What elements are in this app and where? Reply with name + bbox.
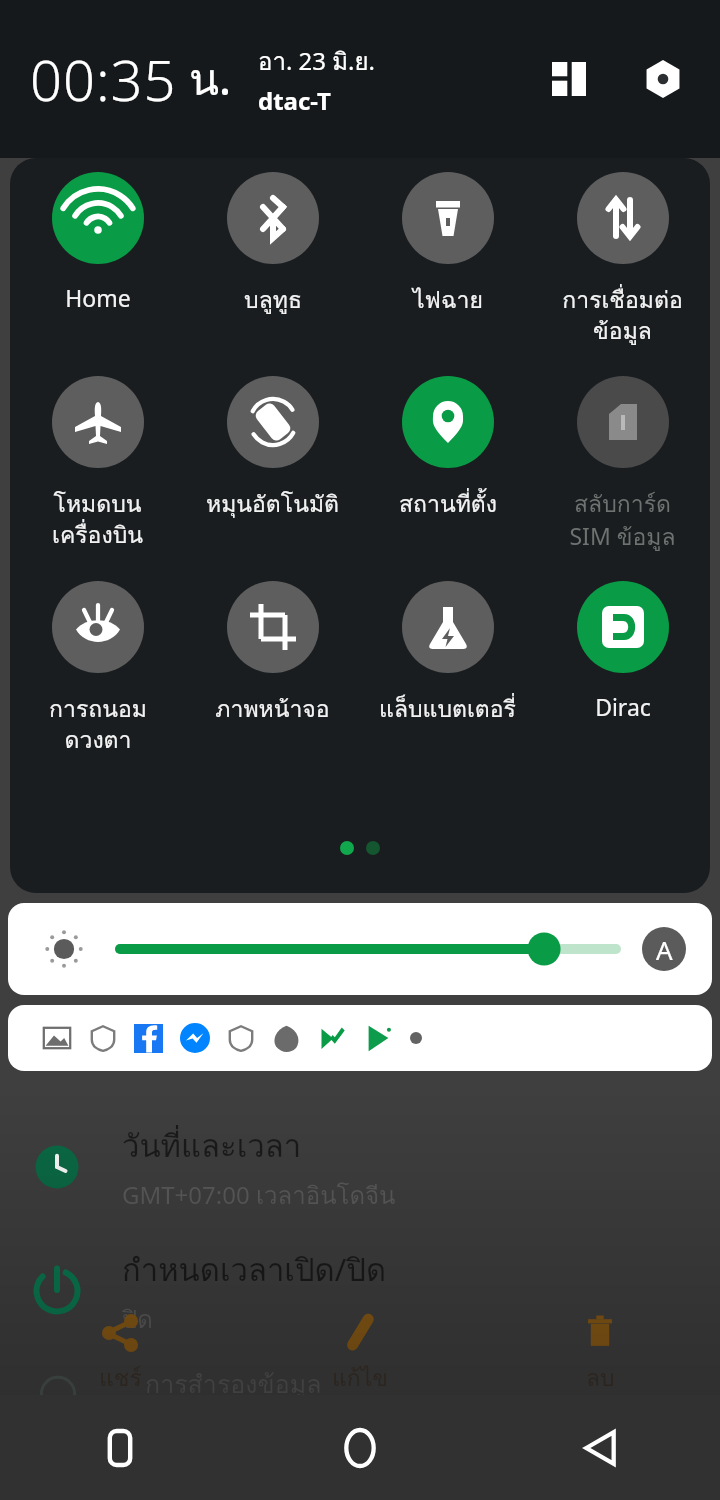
- staticText: สถานที่ตั้ง: [399, 486, 497, 523]
- button[interactable]: แก้ไข: [240, 1310, 480, 1400]
- staticText: ลบ: [586, 1360, 615, 1397]
- button[interactable]: กำหนดเวลาเปิด/ปิด: [0, 1236, 720, 1346]
- button[interactable]: ไฟฉาย: [360, 172, 535, 319]
- staticText: บลูทูธ: [244, 282, 302, 319]
- staticText: กำหนดเวลาเปิด/ปิด: [122, 1245, 387, 1294]
- staticText: วันที่และเวลา: [122, 1121, 302, 1170]
- staticText: ภาพหน้าจอ: [215, 691, 330, 728]
- staticText: หมุนอัตโนมัติ: [206, 486, 339, 523]
- staticText: Dirac: [595, 691, 651, 722]
- staticText: อา. 23 มิ.ย.: [258, 42, 376, 80]
- button[interactable]: [8, 1005, 712, 1071]
- staticText: dtac-T: [258, 84, 331, 117]
- button[interactable]: Recents: [0, 1395, 240, 1500]
- staticText: การสำรองข้อมูล: [145, 1364, 322, 1404]
- button[interactable]: Brightness: [8, 903, 712, 995]
- button[interactable]: วันที่และเวลา: [0, 1112, 720, 1222]
- button[interactable]: Home: [10, 172, 185, 313]
- staticText: สลับการ์ด SIM ข้อมูล: [569, 486, 676, 555]
- staticText: การเชื่อมต่อ ข้อมูล: [562, 282, 683, 350]
- button[interactable]: การถนอม ดวงตา: [10, 581, 185, 759]
- button[interactable]: ภาพหน้าจอ: [185, 581, 360, 728]
- staticText: 00:35: [30, 41, 177, 117]
- staticText: แล็บแบตเตอรี่: [379, 691, 516, 728]
- button[interactable]: แชร์: [0, 1310, 240, 1400]
- button[interactable]: หมุนอัตโนมัติ: [185, 376, 360, 523]
- staticText: น.: [189, 44, 232, 114]
- button[interactable]: Settings: [636, 52, 690, 106]
- button[interactable]: สถานที่ตั้ง: [360, 376, 535, 523]
- staticText: ปิด: [122, 1300, 153, 1338]
- staticText: ไฟฉาย: [413, 282, 483, 319]
- button[interactable]: Dirac: [535, 581, 710, 722]
- button[interactable]: Home: [240, 1395, 480, 1500]
- button[interactable]: โหมดบน เครื่องบิน: [10, 376, 185, 554]
- button[interactable]: สลับการ์ด SIM ข้อมูล: [535, 376, 710, 555]
- button[interactable]: การเชื่อมต่อ ข้อมูล: [535, 172, 710, 350]
- button[interactable]: บลูทูธ: [185, 172, 360, 319]
- staticText: โหมดบน เครื่องบิน: [52, 486, 143, 554]
- staticText: การถนอม ดวงตา: [49, 691, 147, 759]
- staticText: A: [656, 932, 673, 967]
- button[interactable]: A: [642, 927, 686, 971]
- button[interactable]: Split screen: [542, 52, 596, 106]
- staticText: GMT+07:00 เวลาอินโดจีน: [122, 1176, 396, 1214]
- button[interactable]: Back: [480, 1395, 720, 1500]
- staticText: แชร์: [99, 1360, 142, 1397]
- button[interactable]: แล็บแบตเตอรี่: [360, 581, 535, 728]
- button[interactable]: ลบ: [480, 1310, 720, 1400]
- staticText: Home: [65, 282, 131, 313]
- staticText: แก้ไข: [332, 1360, 389, 1397]
